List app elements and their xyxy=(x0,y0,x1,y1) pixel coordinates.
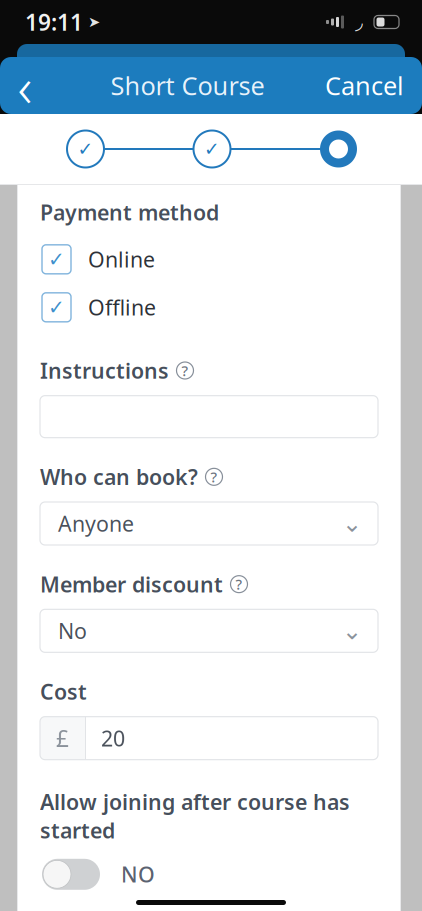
staticText: ⌄ xyxy=(342,617,362,644)
staticText: ✓ xyxy=(48,296,65,319)
staticText: NO xyxy=(121,860,155,888)
staticText: ⌄ xyxy=(342,510,362,537)
staticText: ? xyxy=(181,361,188,380)
staticText: Payment method xyxy=(40,198,219,226)
button[interactable]: Cancel xyxy=(325,57,422,114)
staticText: ✓ xyxy=(48,248,65,271)
staticText: ➤ xyxy=(88,14,100,30)
staticText: ? xyxy=(210,467,217,487)
staticText: 19:11 xyxy=(25,7,83,37)
staticText: Who can book? xyxy=(40,463,198,491)
button[interactable]: ✓ xyxy=(40,237,378,281)
staticText: Online xyxy=(88,245,155,273)
staticText: Member discount xyxy=(40,570,223,598)
staticText: Instructions xyxy=(40,356,169,385)
button[interactable]: No xyxy=(40,609,378,652)
staticText: £ xyxy=(56,723,69,753)
staticText: Short Course xyxy=(110,69,264,102)
staticText: Cost xyxy=(40,677,87,706)
staticText: Cancel xyxy=(325,69,404,102)
button[interactable]: Back xyxy=(0,57,50,114)
staticText: Offline xyxy=(88,293,156,321)
staticText: ‹ xyxy=(17,48,32,123)
button[interactable]: Allow joining after course has started, … xyxy=(40,851,378,897)
button[interactable]: ✓ xyxy=(40,285,378,329)
staticText: 20 xyxy=(101,724,125,752)
staticText: ◞ xyxy=(355,11,363,33)
staticText: Allow joining after course has started xyxy=(40,788,350,844)
staticText: ✓ xyxy=(77,138,93,160)
staticText: ✓ xyxy=(204,138,220,160)
staticText: ? xyxy=(235,574,242,594)
button[interactable]: Anyone xyxy=(40,502,378,545)
staticText: No xyxy=(58,617,87,645)
staticText: Anyone xyxy=(58,509,134,538)
